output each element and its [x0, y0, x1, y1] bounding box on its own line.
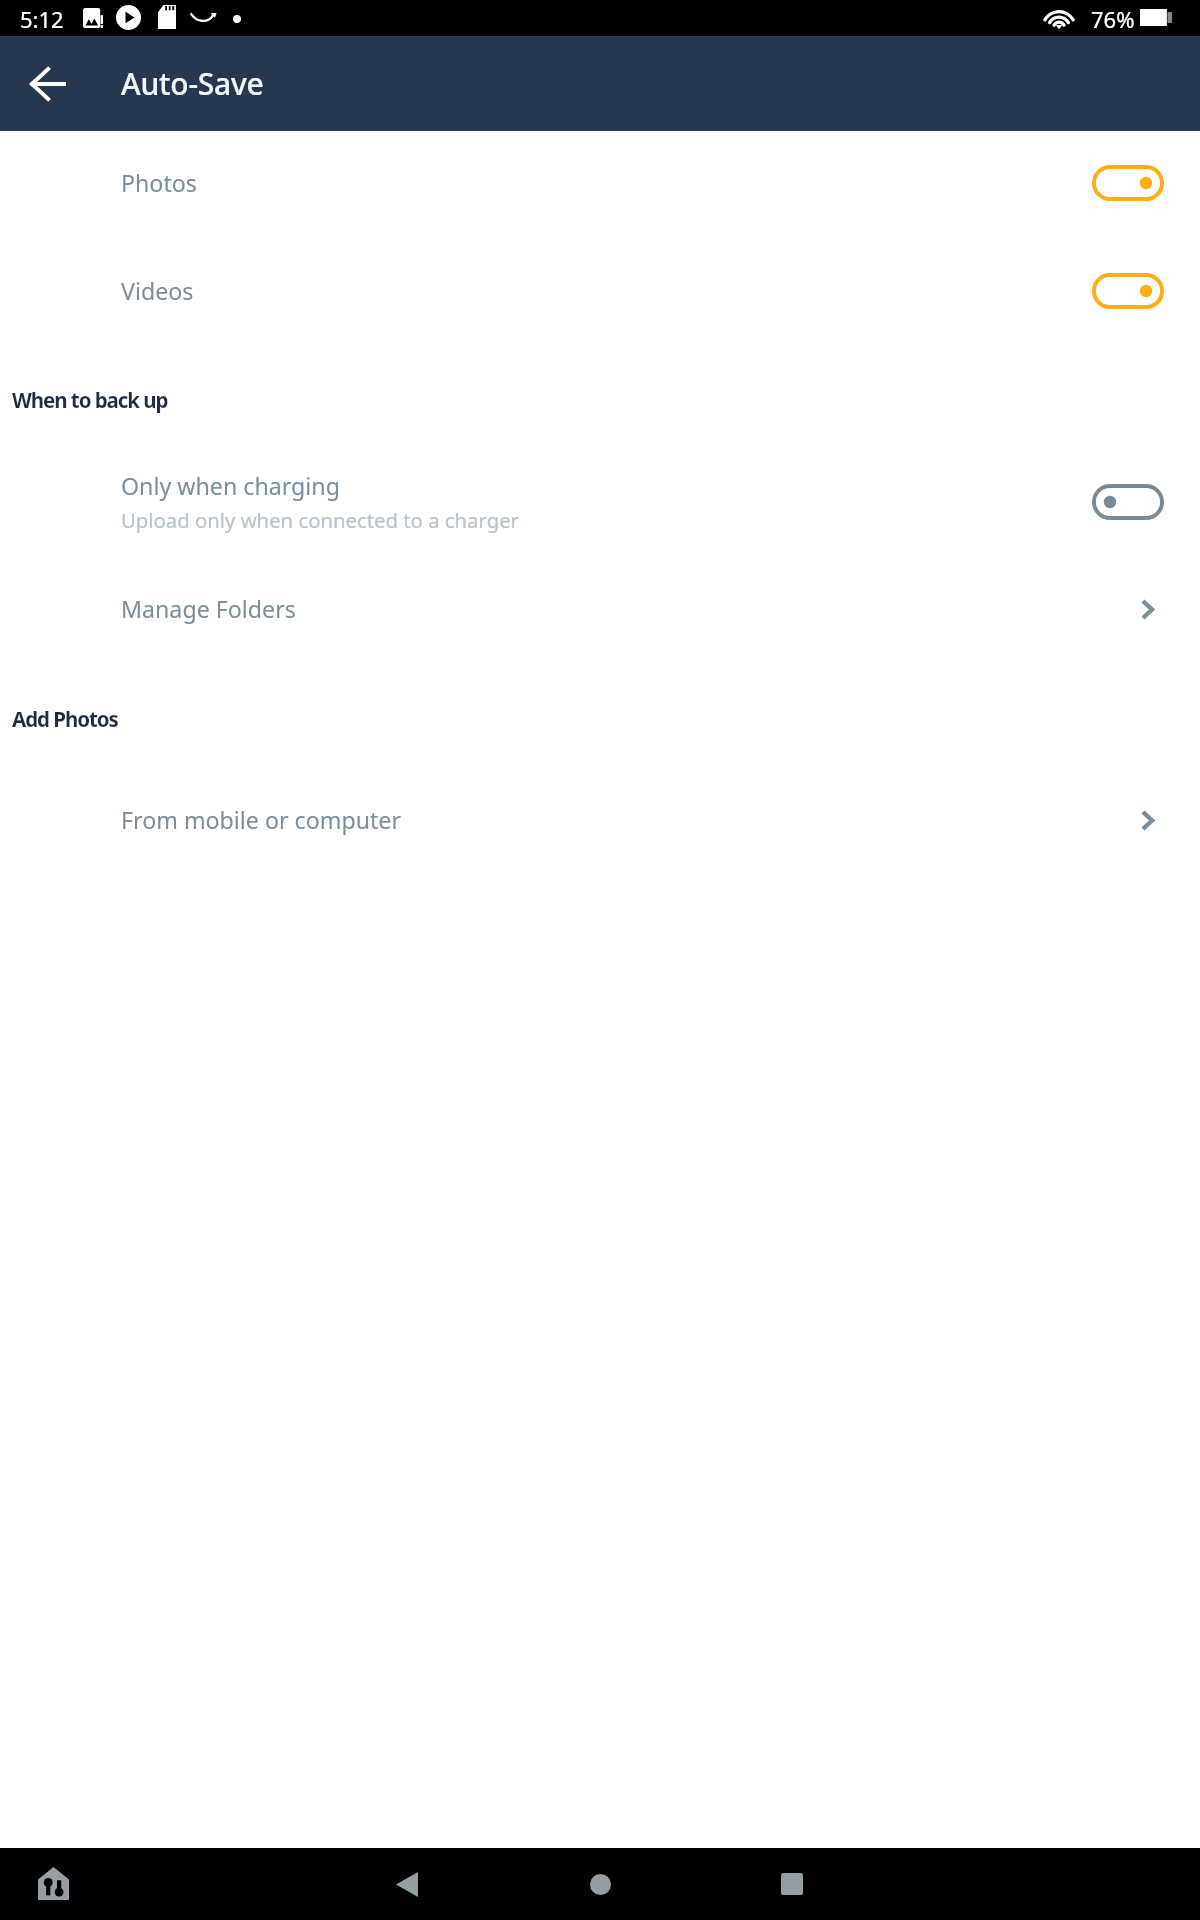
button[interactable]: Manage Folders [0, 555, 1200, 663]
staticText: Only when charging [121, 470, 340, 502]
button[interactable]: Recent apps [758, 1850, 826, 1918]
button[interactable]: Device settings [24, 1854, 82, 1912]
button[interactable]: Home [566, 1850, 634, 1918]
button[interactable]: Only when charging [0, 448, 1200, 556]
staticText: Videos [121, 275, 194, 307]
button[interactable]: Photos [0, 129, 1200, 237]
staticText: Photos [121, 167, 197, 199]
button[interactable]: Videos [0, 237, 1200, 345]
staticText: Manage Folders [121, 593, 296, 625]
staticText: When to back up [12, 386, 168, 414]
staticText: 5:12 [20, 4, 64, 34]
staticText: From mobile or computer [121, 804, 402, 836]
staticText: Auto-Save [121, 63, 264, 104]
button[interactable]: From mobile or computer [0, 766, 1200, 874]
staticText: 76% [1091, 4, 1135, 34]
button[interactable]: Back [373, 1850, 441, 1918]
staticText: Upload only when connected to a charger [121, 506, 519, 534]
staticText: Add Photos [12, 705, 118, 733]
button[interactable]: Navigate up [14, 50, 82, 118]
